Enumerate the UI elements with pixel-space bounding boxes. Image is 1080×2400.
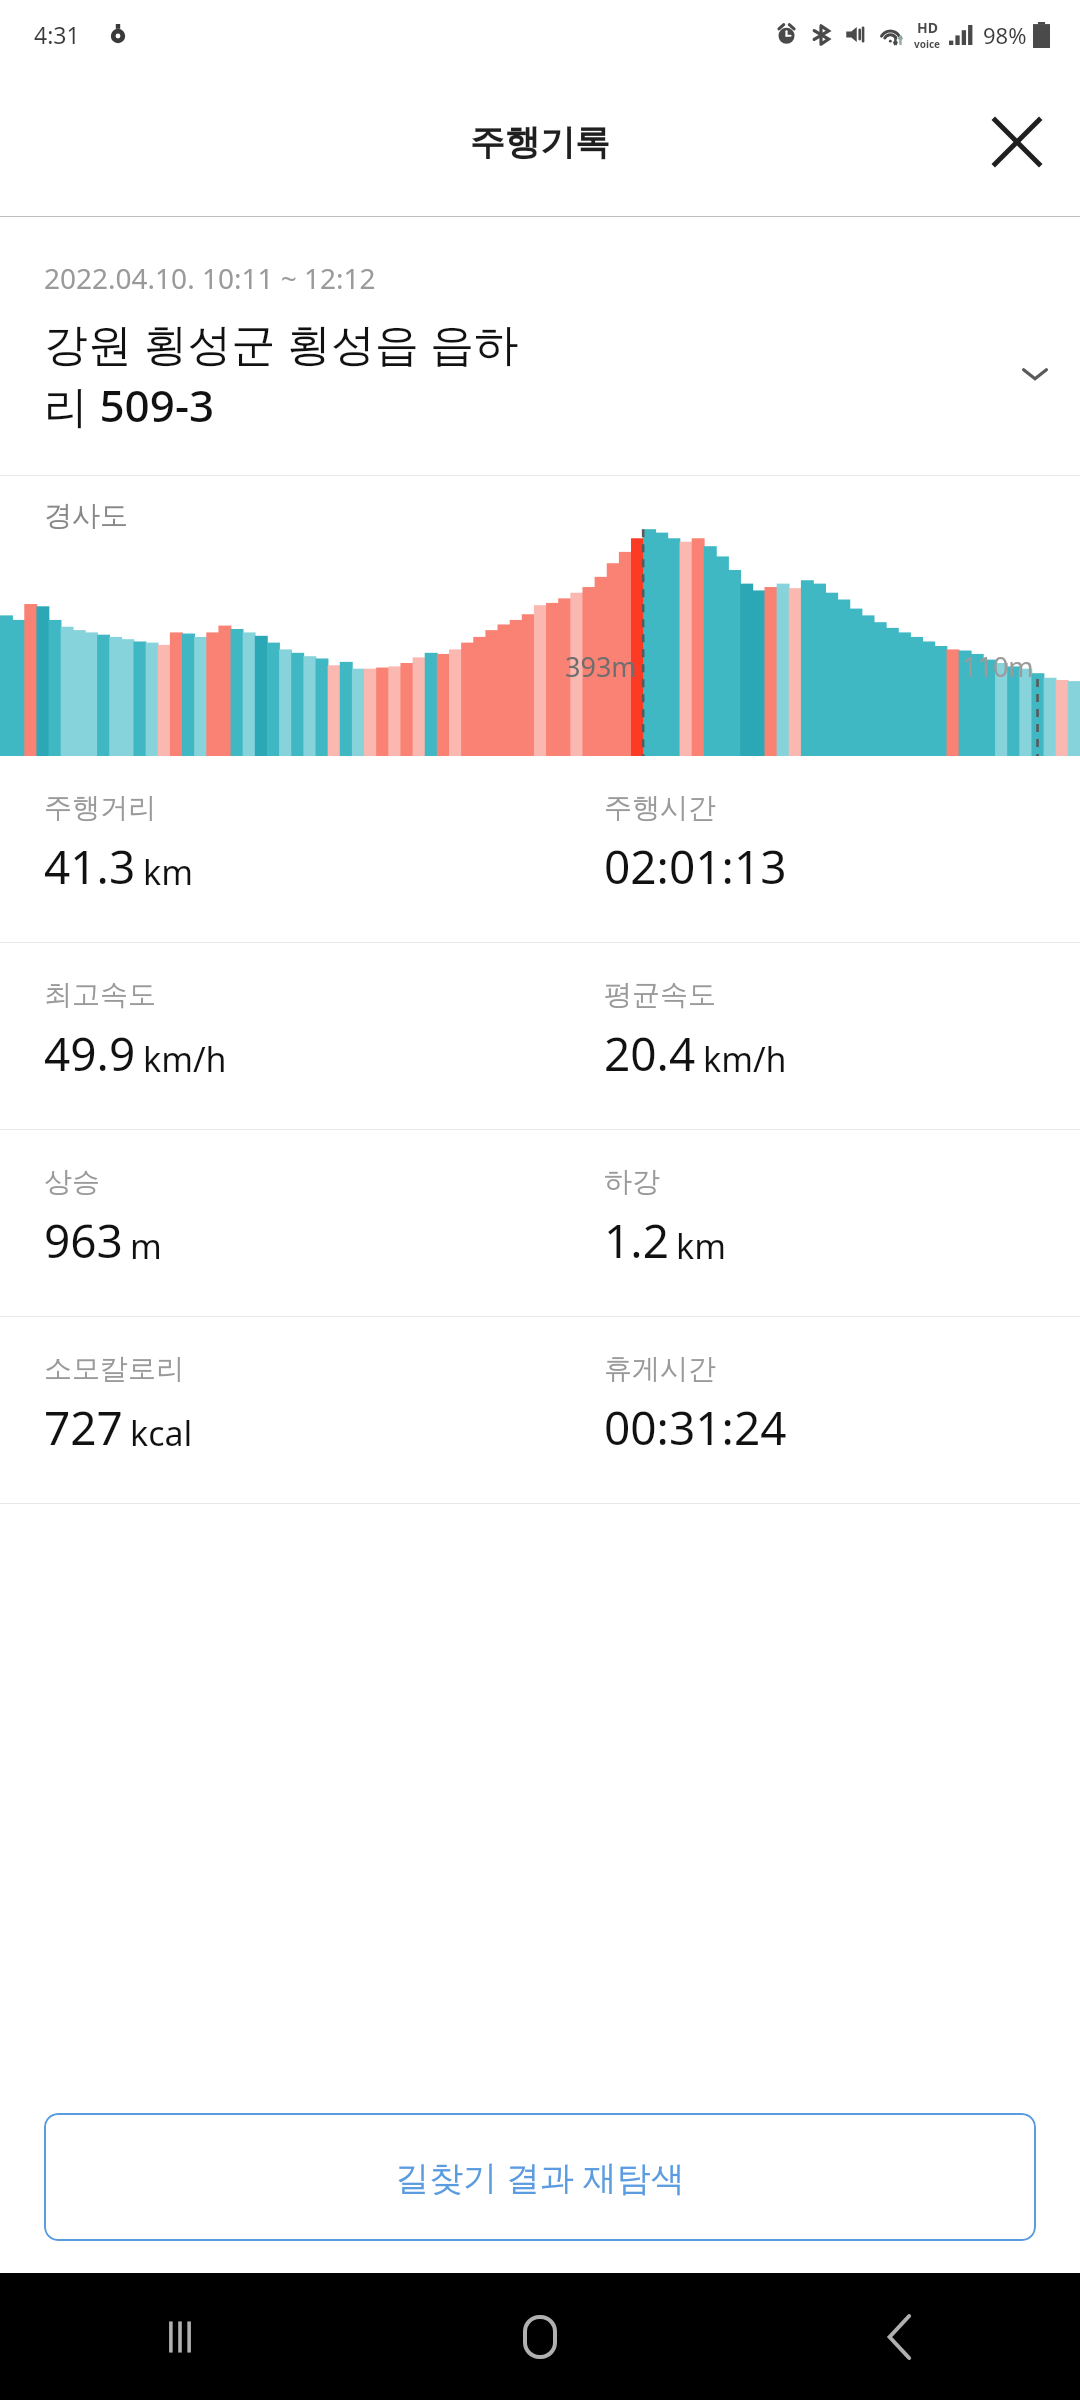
staticText: 1.2 [604, 1209, 669, 1272]
staticText: 하강 [604, 1164, 660, 1199]
staticText: 주행거리 [44, 790, 156, 825]
staticText: 경사도 [44, 498, 128, 533]
staticText: 393m [565, 648, 637, 685]
staticText: 02:01:13 [604, 835, 787, 898]
staticText: km [676, 1223, 726, 1269]
staticText: m [130, 1223, 162, 1269]
staticText: 소모칼로리 [44, 1351, 184, 1386]
staticText: km [143, 849, 193, 895]
staticText: 41.3 [44, 835, 136, 898]
staticText: 2022.04.10. 10:11 ~ 12:12 [44, 259, 376, 297]
button[interactable]: Recents [0, 2273, 360, 2400]
staticText: 4:31 [34, 19, 80, 50]
staticText: 최고속도 [44, 977, 156, 1012]
button[interactable]: Back [720, 2273, 1080, 2400]
staticText: 20.4 [604, 1022, 696, 1085]
staticText: 길찾기 결과 재탐색 [395, 2154, 685, 2200]
staticText: 평균속도 [604, 977, 716, 1012]
staticText: 휴게시간 [604, 1351, 716, 1386]
staticText: 주행시간 [604, 790, 716, 825]
staticText: 주행기록 [470, 120, 610, 164]
staticText: 49.9 [44, 1022, 136, 1085]
staticText: 98% [983, 20, 1027, 50]
staticText: km/h [703, 1036, 787, 1082]
button[interactable]: 2022.04.10. 10:11 ~ 12:12 [0, 217, 1080, 475]
staticText: 963 [44, 1209, 123, 1272]
staticText: km/h [143, 1036, 227, 1082]
staticText: 110m [962, 648, 1034, 685]
staticText: kcal [130, 1410, 193, 1456]
staticText: 727 [44, 1396, 123, 1459]
staticText: 00:31:24 [604, 1396, 787, 1459]
staticText: HD [917, 18, 938, 37]
button[interactable]: 길찾기 결과 재탐색 [44, 2113, 1036, 2241]
staticText: 강원 횡성군 횡성읍 읍하리 509-3 [44, 313, 532, 435]
button[interactable]: Home [360, 2273, 720, 2400]
staticText: 상승 [44, 1164, 100, 1199]
button[interactable]: Close [974, 99, 1060, 185]
staticText: voice [914, 37, 941, 51]
